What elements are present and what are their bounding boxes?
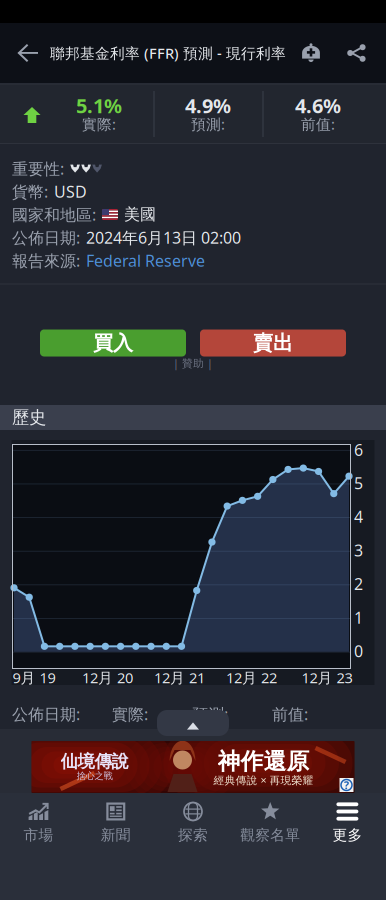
button[interactable]: Federal Reserve <box>86 250 205 271</box>
staticText: 聯邦基金利率 (FFR) 預測 - 現行利率 <box>50 43 286 63</box>
staticText: 探索 <box>178 826 208 844</box>
staticText: 公佈日期: <box>12 703 80 725</box>
staticText: 報告來源: <box>12 250 80 271</box>
staticText: 4.6% <box>295 92 341 119</box>
staticText: 6 <box>354 439 363 460</box>
staticText: 經典傳說 × 再現榮耀 <box>213 773 313 787</box>
staticText: | 贊助 | <box>173 356 213 370</box>
staticText: ? <box>344 778 349 792</box>
button[interactable]: Create alert <box>290 23 332 83</box>
staticText: 歷史 <box>12 407 46 428</box>
staticText: 賣出 <box>253 331 293 355</box>
staticText: 觀察名單 <box>240 826 300 844</box>
staticText: 前值: <box>301 114 335 134</box>
button[interactable]: Share <box>336 23 378 83</box>
button[interactable]: Back <box>6 23 50 83</box>
staticText: 5 <box>354 472 363 494</box>
staticText: 預測: <box>191 114 225 134</box>
button[interactable]: Collapse history <box>157 710 229 736</box>
staticText: 12月 21 <box>154 668 205 687</box>
button[interactable]: 賣出 <box>200 329 346 356</box>
staticText: USD <box>54 181 87 202</box>
staticText: 買入 <box>93 331 133 355</box>
staticText: 0 <box>354 640 363 662</box>
button[interactable]: 更多 <box>309 795 386 851</box>
staticText: 重要性: <box>12 158 64 179</box>
staticText: 仙境傳說 <box>60 751 128 772</box>
staticText: Federal Reserve <box>86 250 205 271</box>
staticText: 公佈日期: <box>12 227 80 248</box>
staticText: 5.1% <box>76 92 122 119</box>
staticText: 4 <box>354 506 363 527</box>
staticText: 美國 <box>124 205 156 224</box>
staticText: 12月 20 <box>82 668 133 687</box>
staticText: 前值: <box>272 703 308 725</box>
button[interactable]: Advertisement <box>31 741 354 793</box>
staticText: 12月 23 <box>301 668 352 687</box>
staticText: 預測: <box>192 703 228 725</box>
staticText: 市場 <box>24 826 54 844</box>
staticText: 捨心之戰 <box>76 770 112 782</box>
staticText: 實際: <box>112 703 148 725</box>
staticText: 2024年6月13日 02:00 <box>86 227 241 248</box>
staticText: 2 <box>354 573 363 594</box>
button[interactable]: 觀察名單 <box>232 795 309 851</box>
button[interactable]: 新聞 <box>77 795 154 851</box>
staticText: 1 <box>354 607 363 628</box>
staticText: 實際: <box>82 114 116 134</box>
staticText: 新聞 <box>101 826 131 844</box>
staticText: 更多 <box>332 826 362 844</box>
staticText: 3 <box>354 540 363 561</box>
button[interactable]: 買入 <box>40 329 186 356</box>
button[interactable]: 探索 <box>154 795 232 851</box>
button[interactable]: 市場 <box>0 795 77 851</box>
staticText: 9月 19 <box>12 668 55 687</box>
staticText: 12月 22 <box>226 668 277 687</box>
staticText: 4.9% <box>185 92 231 119</box>
staticText: 國家和地區: <box>12 204 96 225</box>
staticText: 神作還原 <box>217 748 309 775</box>
staticText: 貨幣: <box>12 181 48 202</box>
